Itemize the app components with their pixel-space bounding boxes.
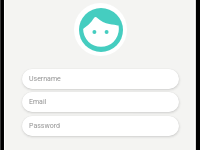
button[interactable]: Password	[22, 116, 179, 136]
staticText: Password	[29, 122, 60, 130]
staticText: Username	[29, 75, 61, 83]
button[interactable]: Email	[22, 92, 179, 112]
button[interactable]: Username	[22, 69, 179, 89]
button[interactable]: Profile avatar	[74, 3, 127, 56]
staticText: Email	[29, 98, 47, 106]
